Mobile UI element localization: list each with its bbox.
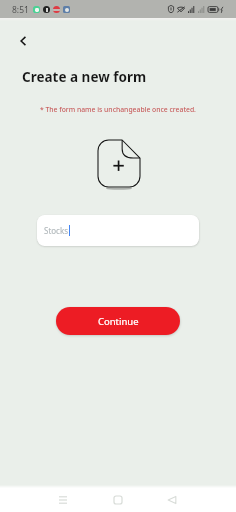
- button[interactable]: Back: [160, 488, 184, 512]
- button[interactable]: Home: [106, 488, 130, 512]
- button[interactable]: Stocks: [37, 215, 199, 246]
- button[interactable]: Recent apps: [51, 488, 75, 512]
- staticText: 8:51: [12, 4, 29, 16]
- button[interactable]: Back: [10, 28, 35, 53]
- staticText: Stocks: [44, 225, 69, 236]
- staticText: Create a new form: [22, 68, 147, 86]
- button[interactable]: Continue: [56, 307, 180, 335]
- staticText: * The form name is unchangeable once cre…: [0, 105, 236, 114]
- staticText: Continue: [98, 315, 139, 328]
